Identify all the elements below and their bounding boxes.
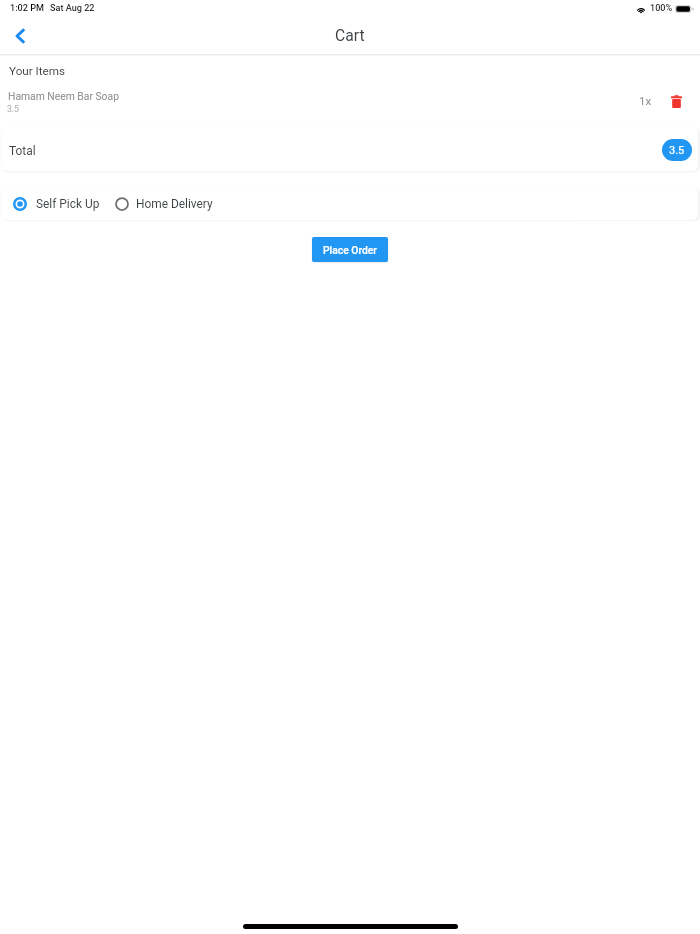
staticText: Hamam Neem Bar Soap	[8, 90, 119, 102]
staticText: Place Order	[323, 244, 377, 256]
staticText: Total	[9, 144, 36, 158]
staticText: 3.5	[669, 144, 685, 157]
staticText: 1x	[639, 94, 652, 107]
button[interactable]: Self Pick Up	[13, 197, 100, 211]
staticText: Home Delivery	[136, 197, 213, 211]
staticText: 1:02 PM	[10, 3, 44, 14]
staticText: Cart	[335, 26, 365, 44]
staticText: Sat Aug 22	[50, 3, 95, 14]
staticText: 100%	[650, 3, 673, 14]
staticText: Your Items	[9, 64, 66, 78]
button[interactable]: Place Order	[312, 237, 388, 262]
button[interactable]: Back	[5, 22, 35, 50]
button[interactable]: Delete item	[664, 89, 688, 113]
staticText: 3.5	[7, 104, 19, 114]
staticText: Self Pick Up	[36, 197, 100, 211]
button[interactable]: Home Delivery	[115, 197, 213, 211]
